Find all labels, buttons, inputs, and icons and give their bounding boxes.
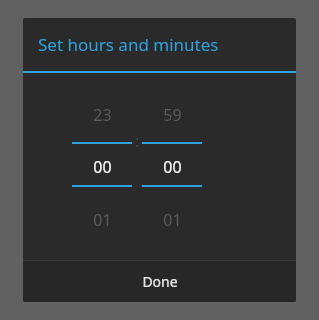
- staticText: 00: [163, 156, 182, 176]
- staticText: Set hours and minutes: [38, 33, 219, 56]
- staticText: :: [135, 129, 140, 152]
- staticText: 59: [163, 104, 182, 124]
- staticText: 01: [93, 209, 112, 229]
- button[interactable]: Number picker: [142, 73, 202, 260]
- staticText: Done: [142, 272, 178, 291]
- staticText: 01: [163, 209, 182, 229]
- button[interactable]: Done: [23, 261, 296, 302]
- staticText: 00: [93, 156, 112, 176]
- button[interactable]: Number picker: [72, 73, 132, 260]
- staticText: 23: [93, 104, 112, 124]
